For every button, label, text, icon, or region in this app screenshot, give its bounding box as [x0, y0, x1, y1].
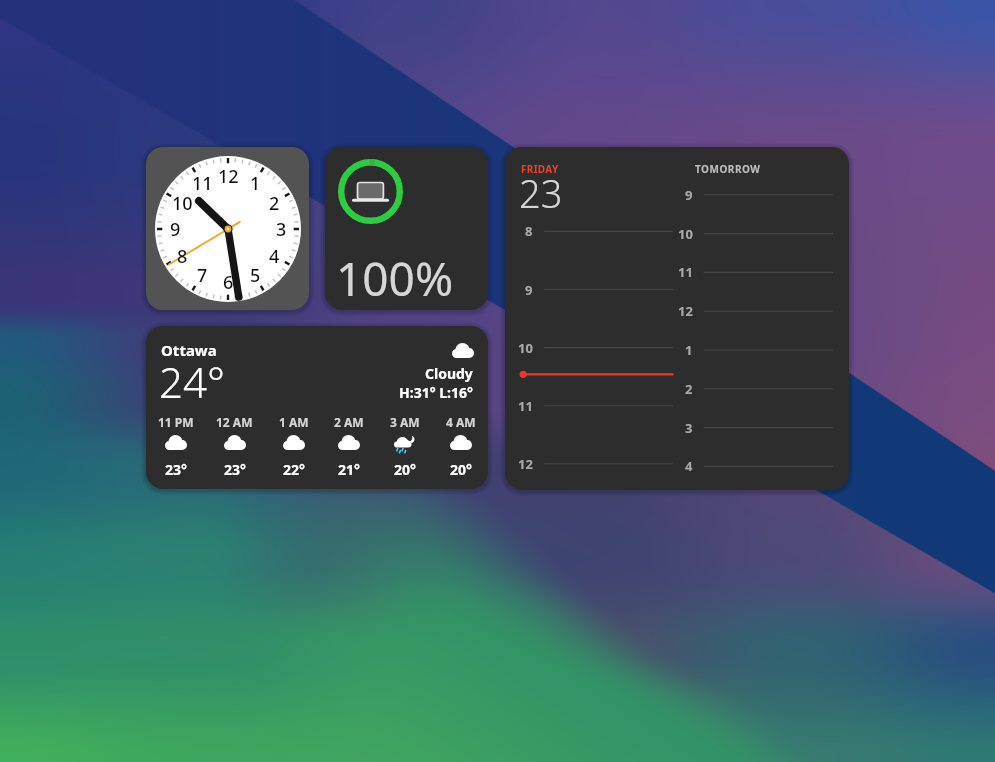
staticText: 21°: [338, 460, 360, 479]
staticText: 10: [172, 191, 193, 216]
staticText: 4 AM: [446, 414, 476, 430]
staticText: 9: [525, 281, 533, 299]
staticText: 8: [177, 244, 188, 269]
staticText: 12: [678, 302, 693, 320]
staticText: 2: [269, 191, 280, 216]
staticText: Cloudy: [425, 364, 473, 383]
button[interactable]: Calendar: [505, 147, 849, 490]
button[interactable]: Weather Ottawa: [146, 326, 488, 489]
staticText: 23°: [165, 460, 187, 479]
staticText: 9: [170, 217, 181, 242]
staticText: 100%: [336, 247, 454, 310]
staticText: 7: [197, 263, 208, 288]
staticText: 10: [678, 225, 693, 243]
button[interactable]: Battery 100 percent: [325, 147, 488, 310]
staticText: 1 AM: [279, 414, 309, 430]
staticText: 20°: [394, 460, 416, 479]
staticText: 8: [525, 222, 533, 240]
staticText: 24°: [159, 353, 225, 410]
staticText: 23°: [224, 460, 246, 479]
staticText: TOMORROW: [695, 162, 761, 176]
staticText: 23: [519, 167, 563, 219]
button[interactable]: Clock: [146, 147, 309, 310]
staticText: 11 PM: [158, 414, 194, 430]
staticText: 9: [685, 186, 693, 204]
staticText: 12: [518, 455, 533, 473]
staticText: 2 AM: [334, 414, 364, 430]
staticText: 2: [685, 380, 693, 398]
staticText: 3: [685, 419, 693, 437]
staticText: 11: [192, 171, 213, 196]
staticText: 5: [250, 263, 261, 288]
staticText: 20°: [450, 460, 472, 479]
staticText: 12 AM: [216, 414, 253, 430]
staticText: 4: [685, 457, 693, 475]
staticText: Ottawa: [161, 340, 217, 360]
staticText: 11: [518, 397, 533, 415]
staticText: 12: [218, 164, 239, 189]
staticText: 4: [269, 244, 280, 269]
staticText: 1: [685, 341, 693, 359]
staticText: 1: [250, 171, 261, 196]
staticText: 11: [678, 263, 693, 281]
staticText: 3: [276, 217, 287, 242]
staticText: 6: [223, 270, 234, 295]
staticText: 10: [518, 339, 533, 357]
staticText: 3 AM: [390, 414, 420, 430]
staticText: FRIDAY: [521, 162, 559, 176]
staticText: H:31° L:16°: [399, 383, 473, 402]
staticText: 22°: [283, 460, 305, 479]
